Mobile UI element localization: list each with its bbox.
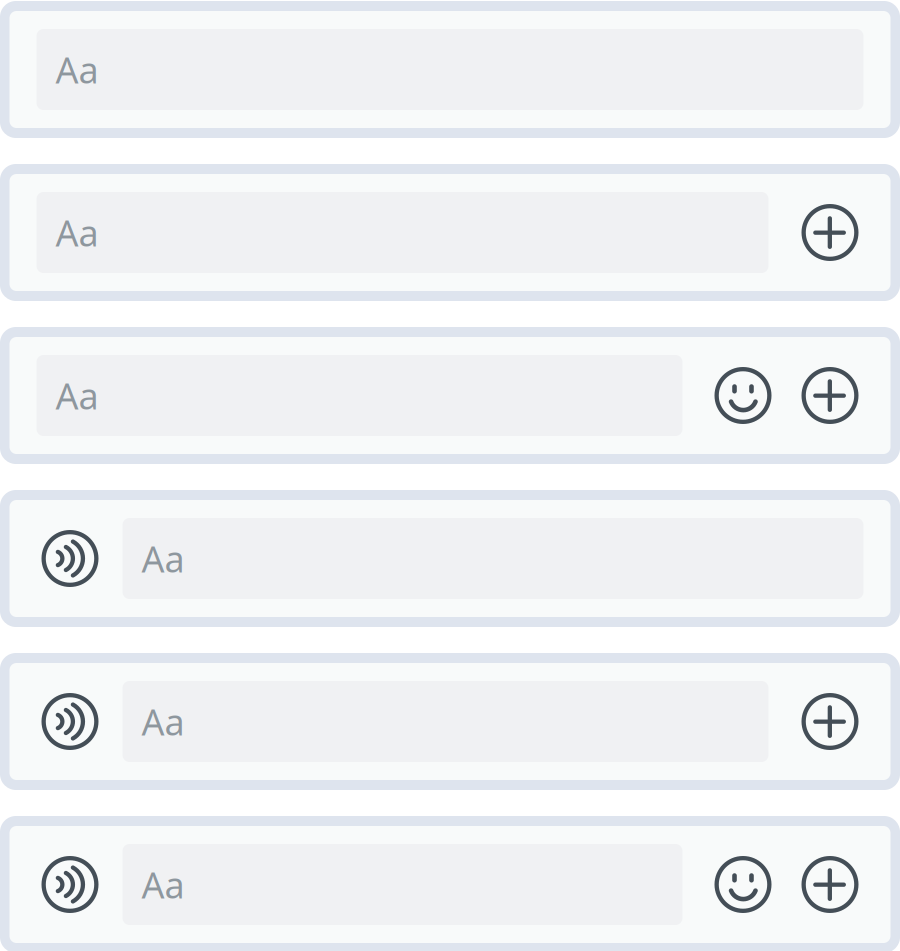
button[interactable]: Aa <box>122 681 768 762</box>
button[interactable]: Add attachment <box>801 856 858 913</box>
staticText: Aa <box>55 46 98 93</box>
button[interactable]: Add attachment <box>801 367 858 424</box>
button[interactable]: Voice message <box>41 530 98 587</box>
staticText: Aa <box>55 209 98 256</box>
staticText: Aa <box>55 372 98 419</box>
button[interactable]: Aa <box>122 844 682 925</box>
button[interactable]: Add attachment <box>801 693 858 750</box>
button[interactable]: Emoji <box>714 367 771 424</box>
button[interactable]: Aa <box>36 29 863 110</box>
staticText: Aa <box>141 861 184 908</box>
button[interactable]: Aa <box>36 355 682 436</box>
button[interactable]: Aa <box>36 192 768 273</box>
staticText: Aa <box>141 698 184 745</box>
button[interactable]: Aa <box>122 518 863 599</box>
button[interactable]: Add attachment <box>801 204 858 261</box>
button[interactable]: Emoji <box>714 856 771 913</box>
button[interactable]: Voice message <box>41 856 98 913</box>
button[interactable]: Voice message <box>41 693 98 750</box>
staticText: Aa <box>141 535 184 582</box>
